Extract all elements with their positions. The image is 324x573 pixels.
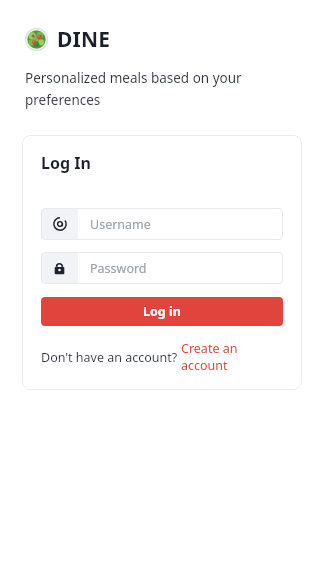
button[interactable]: Log in — [41, 297, 283, 326]
staticText: Username — [90, 216, 151, 233]
button[interactable]: Password — [41, 252, 283, 284]
staticText: Don't have an account? — [41, 349, 181, 366]
staticText: Log In — [41, 152, 91, 174]
staticText: Password — [90, 260, 147, 277]
other: Username — [53, 217, 67, 231]
button[interactable]: Create an account — [181, 340, 283, 374]
button[interactable]: Username — [41, 208, 283, 240]
staticText: Personalized meals based on your prefere… — [25, 69, 284, 109]
other: Password — [53, 262, 66, 275]
staticText: Create an account — [181, 340, 283, 374]
staticText: DINE — [57, 25, 111, 54]
staticText: Log in — [143, 303, 181, 320]
other: DINE logo — [25, 28, 48, 51]
